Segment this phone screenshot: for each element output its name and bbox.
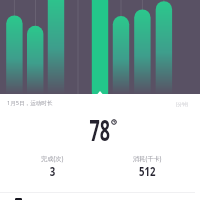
staticText: 3 (50, 163, 55, 179)
staticText: 78 (89, 110, 111, 149)
button[interactable]: 完成(次) (41, 154, 64, 179)
staticText: 完成(次) (41, 154, 64, 162)
staticText: 消耗(千卡) (133, 154, 162, 162)
button[interactable]: 消耗(千卡) (133, 154, 162, 179)
staticText: 1月5日，运动时长 (7, 99, 53, 107)
button[interactable] (0, 0, 200, 94)
button[interactable]: More (15, 198, 22, 200)
staticText: 512 (139, 163, 156, 179)
staticText: (分钟) (176, 101, 188, 107)
